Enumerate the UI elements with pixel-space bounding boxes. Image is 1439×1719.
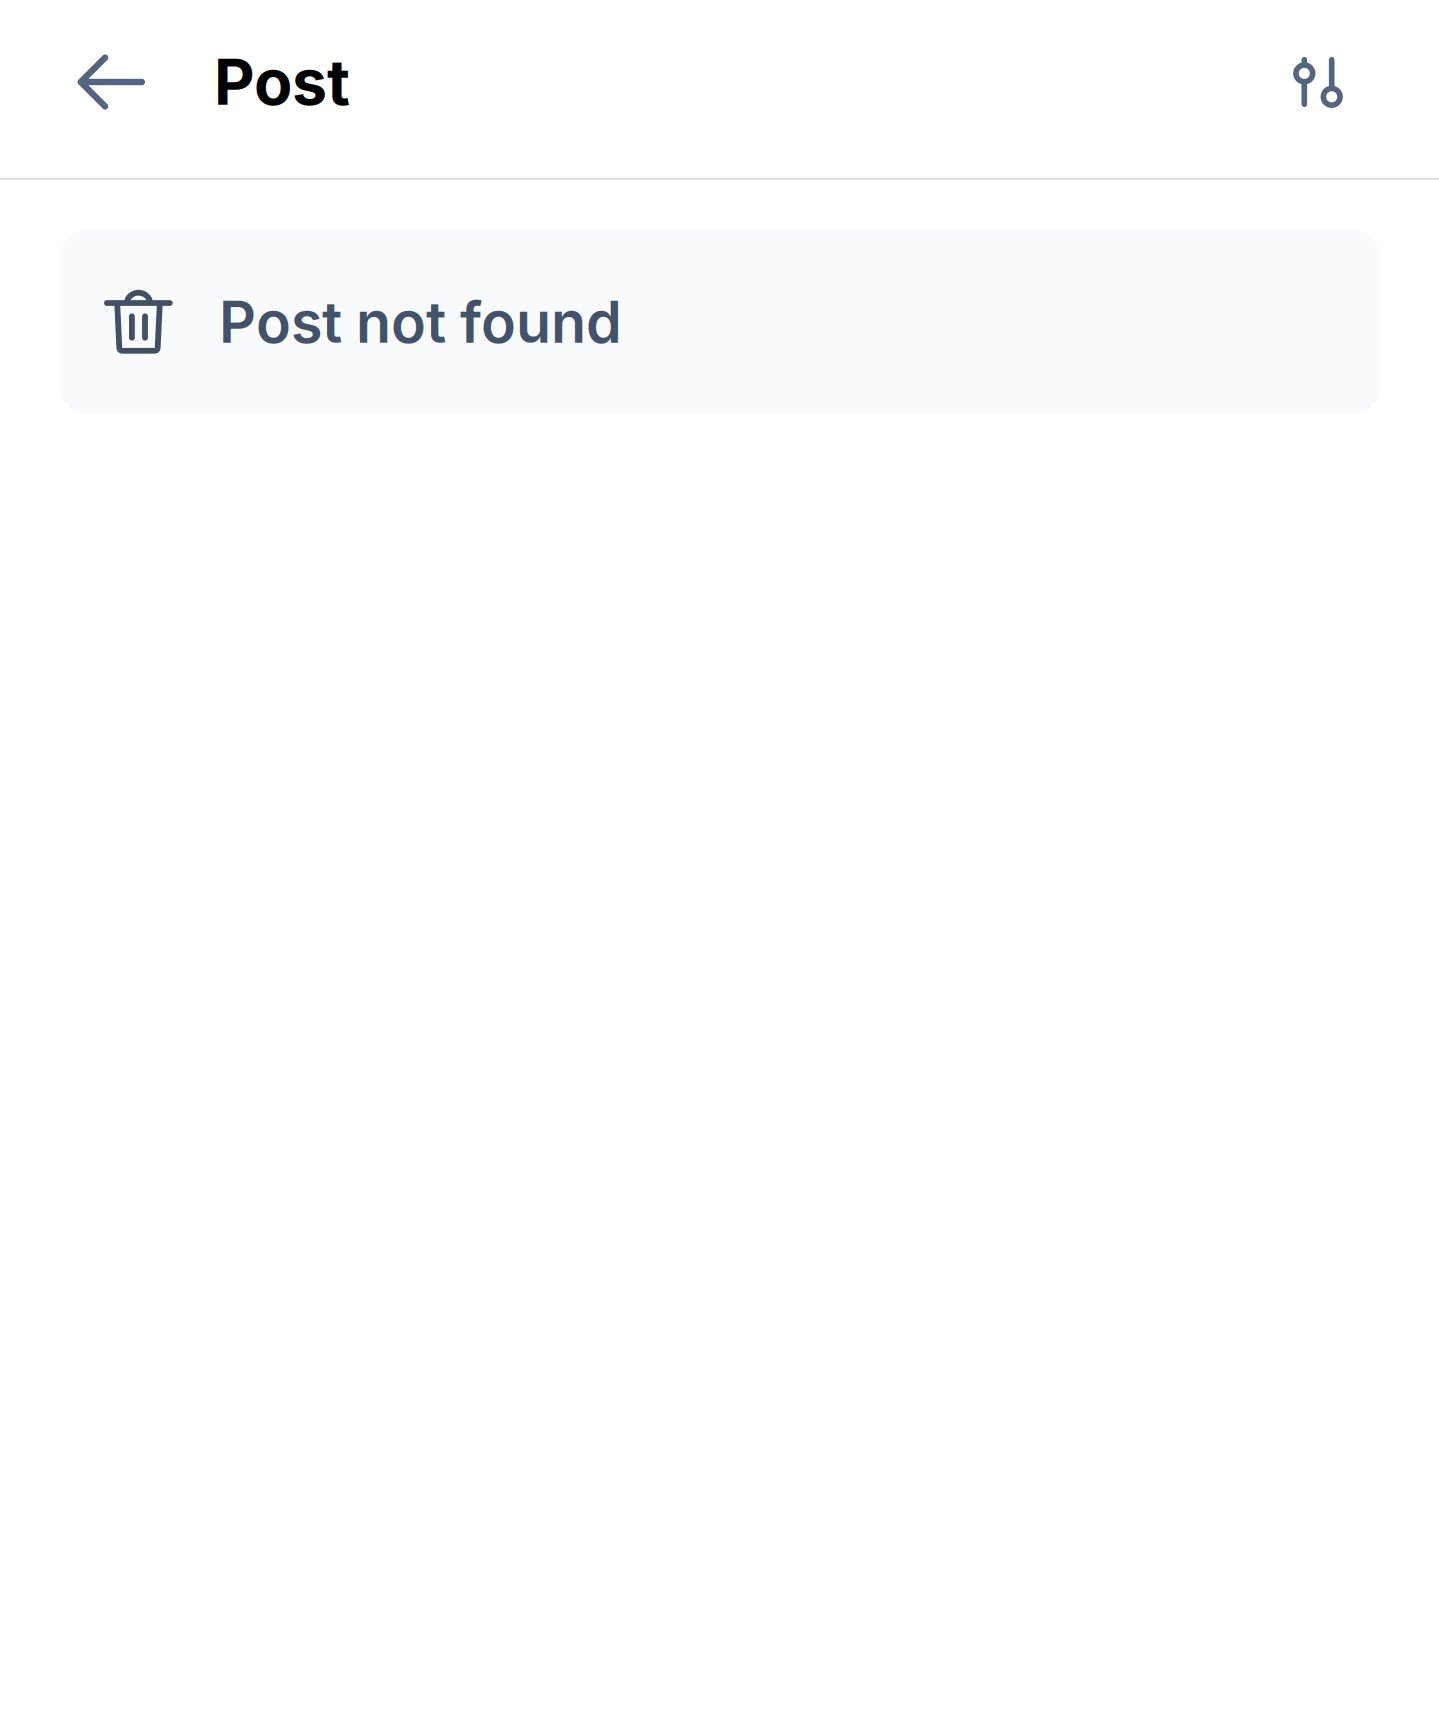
staticText: Post [214,44,350,120]
button[interactable]: Back [0,0,214,164]
staticText: Post not found [219,287,622,357]
button[interactable]: Display options [1219,0,1439,164]
